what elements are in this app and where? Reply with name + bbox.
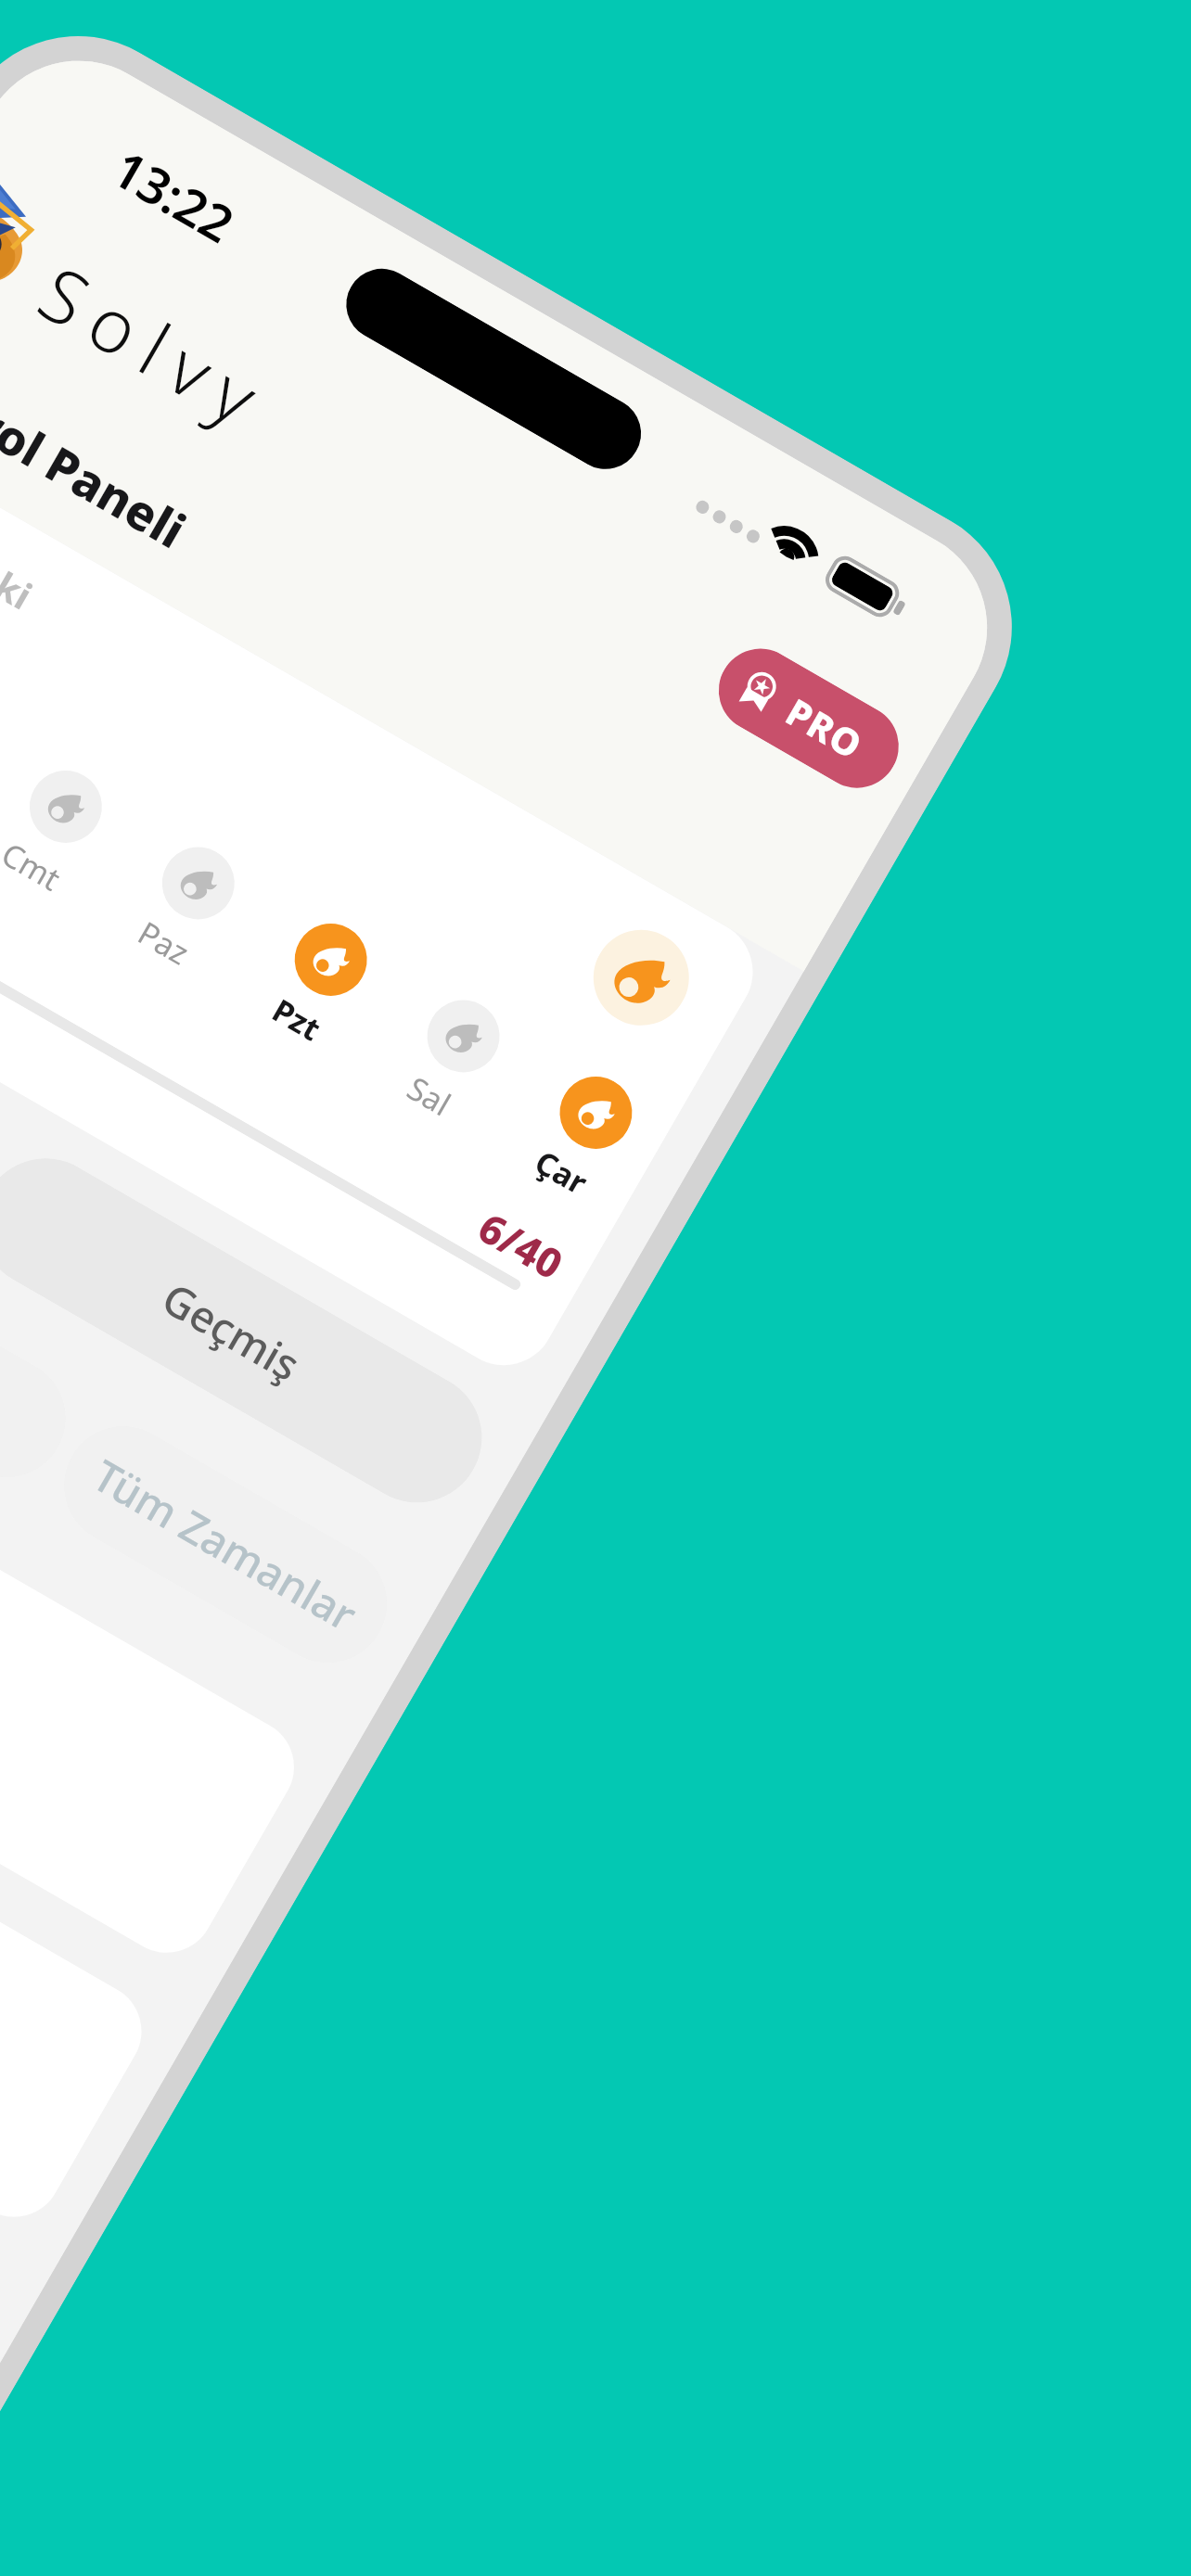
staticText: PRO xyxy=(778,686,873,770)
button[interactable]: Günlük Soru xyxy=(0,1484,159,2235)
staticText: Cmt xyxy=(0,832,69,900)
staticText: Paz xyxy=(131,911,197,974)
button[interactable]: Tüm Zamanlar xyxy=(42,1405,409,1685)
staticText: 6/40 xyxy=(469,1199,574,1292)
button[interactable]: Bu Ay xyxy=(0,1219,87,1499)
button[interactable]: Bu Haftaki xyxy=(0,423,772,1384)
staticText: Tüm Zamanlar xyxy=(83,1446,368,1644)
button[interactable]: Geçmiş xyxy=(0,1135,506,1526)
staticText: Pzt xyxy=(265,989,329,1050)
staticText: Sal xyxy=(400,1066,459,1125)
staticText: Bu Haftaki xyxy=(0,478,42,620)
button[interactable]: Günlük Soru xyxy=(0,1748,6,2499)
staticText: Kontrol Paneli xyxy=(0,332,198,562)
button[interactable]: Günlük Soru xyxy=(0,1220,312,1970)
staticText: Çar xyxy=(528,1140,595,1204)
button[interactable]: PRO xyxy=(703,634,914,803)
staticText: 13:22 xyxy=(101,134,247,258)
staticText: Geçmiş xyxy=(152,1269,311,1394)
staticText: Solvy xyxy=(23,241,290,454)
